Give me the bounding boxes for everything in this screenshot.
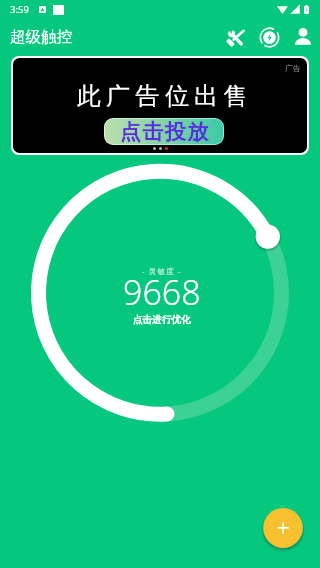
staticText: 9668 (123, 269, 201, 315)
staticText: 点击进行优化 (133, 314, 191, 326)
button[interactable]: Profile (286, 20, 320, 54)
staticText: 此广告位出售 (77, 81, 253, 111)
staticText: 3:59 (10, 3, 29, 16)
button[interactable]: 点击投放 (105, 119, 223, 144)
button[interactable]: Tools (218, 20, 252, 54)
button[interactable]: 广告 (13, 58, 307, 153)
staticText: 点击投放 (119, 119, 209, 144)
staticText: 广告 (285, 63, 301, 73)
button[interactable]: Boost (252, 20, 286, 54)
staticText: 超级触控 (10, 27, 72, 47)
staticText: - 灵敏度 - (142, 266, 182, 276)
button[interactable]: Add (261, 506, 305, 550)
